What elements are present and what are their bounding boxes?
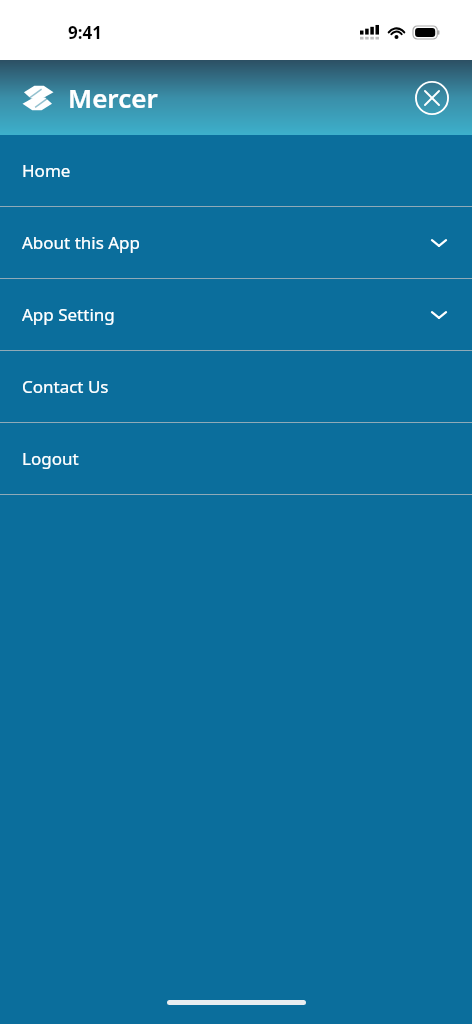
- button[interactable]: Home: [0, 135, 472, 206]
- staticText: About this App: [22, 231, 141, 254]
- button[interactable]: Contact Us: [0, 351, 472, 422]
- button[interactable]: Close: [410, 76, 454, 120]
- staticText: Mercer: [68, 80, 158, 115]
- staticText: Home: [22, 159, 71, 182]
- staticText: App Setting: [22, 303, 115, 326]
- button[interactable]: Logout: [0, 423, 472, 494]
- staticText: Contact Us: [22, 375, 109, 398]
- staticText: 9:41: [68, 21, 102, 44]
- staticText: Logout: [22, 447, 79, 470]
- button[interactable]: App Setting: [0, 279, 472, 350]
- button[interactable]: About this App: [0, 207, 472, 278]
